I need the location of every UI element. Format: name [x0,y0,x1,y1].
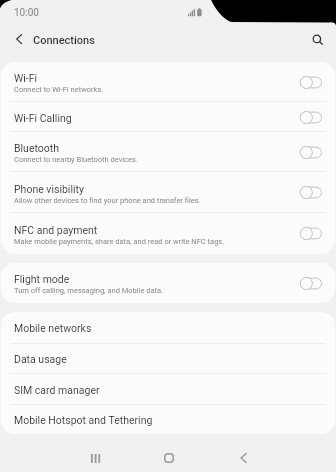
staticText: Wi-Fi [14,72,38,84]
button[interactable]: SIM card manager [1,374,335,405]
button[interactable]: Mobile Hotspot and Tethering [1,405,335,434]
staticText: Mobile networks [14,322,92,334]
button[interactable]: Toggle [300,146,322,159]
button[interactable]: Toggle [300,111,322,124]
button[interactable]: Toggle [300,227,322,240]
button[interactable]: Wi-Fi Calling [1,102,335,132]
staticText: Data usage [14,353,67,365]
button[interactable]: Toggle [300,277,322,290]
button[interactable]: Mobile networks [1,312,335,344]
button[interactable]: Bluetooth [1,132,335,172]
staticText: Wi-Fi Calling [14,112,72,124]
staticText: NFC and payment [14,224,98,236]
button[interactable]: Toggle [300,76,322,89]
staticText: Phone visibility [14,183,84,195]
staticText: Connect to Wi-Fi networks. [14,85,104,94]
staticText: SIM card manager [14,384,100,396]
staticText: Allow other devices to find your phone a… [14,196,201,205]
button[interactable]: Flight mode [1,263,335,303]
staticText: Mobile Hotspot and Tethering [14,414,153,426]
staticText: Connections [33,34,95,47]
button[interactable]: Data usage [1,344,335,374]
button[interactable]: Recent apps [79,442,111,472]
staticText: Connect to nearby Bluetooth devices. [14,155,138,164]
button[interactable]: Phone visibility [1,172,335,213]
staticText: Flight mode [14,273,70,285]
staticText: 10:00 [14,7,39,19]
button[interactable]: Home [153,442,185,472]
button[interactable]: NFC and payment [1,213,335,254]
button[interactable]: Navigate up [0,24,33,57]
button[interactable]: Search [305,27,333,55]
button[interactable]: Back [228,442,260,472]
button[interactable]: Wi-Fi [1,62,335,102]
button[interactable]: Toggle [300,186,322,199]
staticText: Turn off calling, messaging, and Mobile … [14,286,164,295]
staticText: Bluetooth [14,142,59,154]
staticText: Make mobile payments, share data, and re… [14,237,225,246]
